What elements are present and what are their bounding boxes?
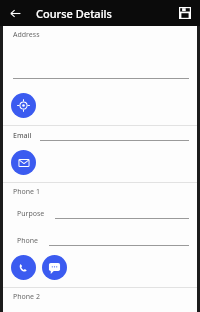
staticText: Phone 1 (13, 187, 40, 197)
staticText: Address (13, 30, 40, 40)
staticText: Course Details (36, 6, 112, 21)
staticText: Purpose (17, 209, 45, 219)
button[interactable]: My location (11, 93, 36, 118)
button[interactable]: Save (176, 4, 194, 22)
staticText: Phone 2 (13, 292, 40, 302)
button[interactable]: Send message (42, 255, 67, 280)
button[interactable]: Send email (11, 150, 36, 175)
button[interactable]: Back (7, 5, 23, 21)
button[interactable]: Call (11, 255, 36, 280)
staticText: Phone (17, 236, 39, 246)
staticText: Email (13, 131, 32, 141)
